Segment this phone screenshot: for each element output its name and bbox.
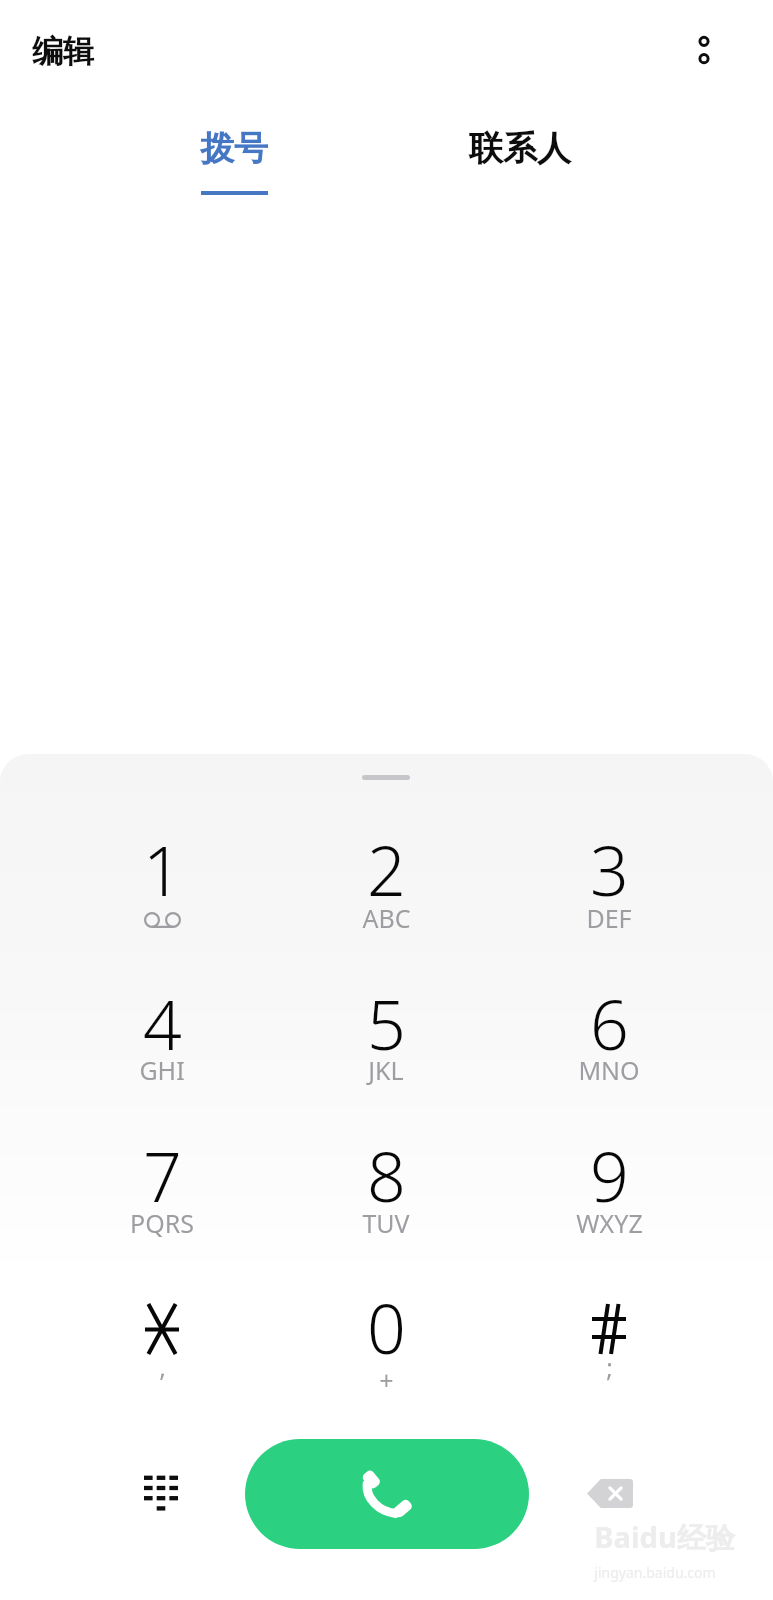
staticText: DEF [586,901,632,935]
staticText: TUV [362,1206,410,1240]
staticText: 3 [590,823,629,916]
staticText: , [159,1350,166,1384]
staticText: 8 [367,1129,406,1222]
staticText: 7 [143,1129,182,1222]
staticText: 拨号 [200,127,268,170]
staticText: 5 [367,977,406,1070]
button[interactable]: , [50,1268,274,1420]
staticText: JKL [368,1053,404,1087]
button[interactable]: 6 [497,963,721,1115]
staticText: jingyan.baidu.com [594,1563,716,1582]
staticText: ABC [362,901,411,935]
staticText: ; [606,1350,613,1384]
staticText: 2 [367,823,406,916]
button[interactable]: 拨号 [154,118,314,210]
button[interactable]: Keypad [127,1454,195,1522]
button[interactable]: ; [497,1268,721,1420]
staticText: WXYZ [576,1206,643,1240]
button[interactable]: 4 [50,963,274,1115]
staticText: + [379,1363,394,1397]
button[interactable]: 0 [274,1268,498,1420]
button[interactable]: 9 [497,1116,721,1268]
button[interactable]: 联系人 [424,118,616,210]
staticText: 6 [590,977,629,1070]
button[interactable]: Call [245,1439,529,1549]
staticText: 1 [143,823,182,916]
staticText: Baidu经验 [594,1517,735,1557]
button[interactable]: 5 [274,963,498,1115]
button[interactable]: 2 [274,811,498,963]
button[interactable]: 3 [497,811,721,963]
button[interactable]: More options [676,22,732,78]
staticText: PQRS [130,1206,194,1240]
staticText: 9 [590,1129,629,1222]
button[interactable]: 8 [274,1116,498,1268]
staticText: MNO [578,1053,640,1087]
staticText: 4 [143,977,182,1070]
staticText: 联系人 [469,127,571,170]
staticText: GHI [139,1053,185,1087]
button[interactable]: 编辑 [18,22,108,81]
button[interactable]: 1 [50,811,274,963]
staticText: 编辑 [32,32,94,71]
staticText: 0 [367,1281,406,1374]
button[interactable]: Backspace [576,1459,644,1527]
button[interactable]: 7 [50,1116,274,1268]
